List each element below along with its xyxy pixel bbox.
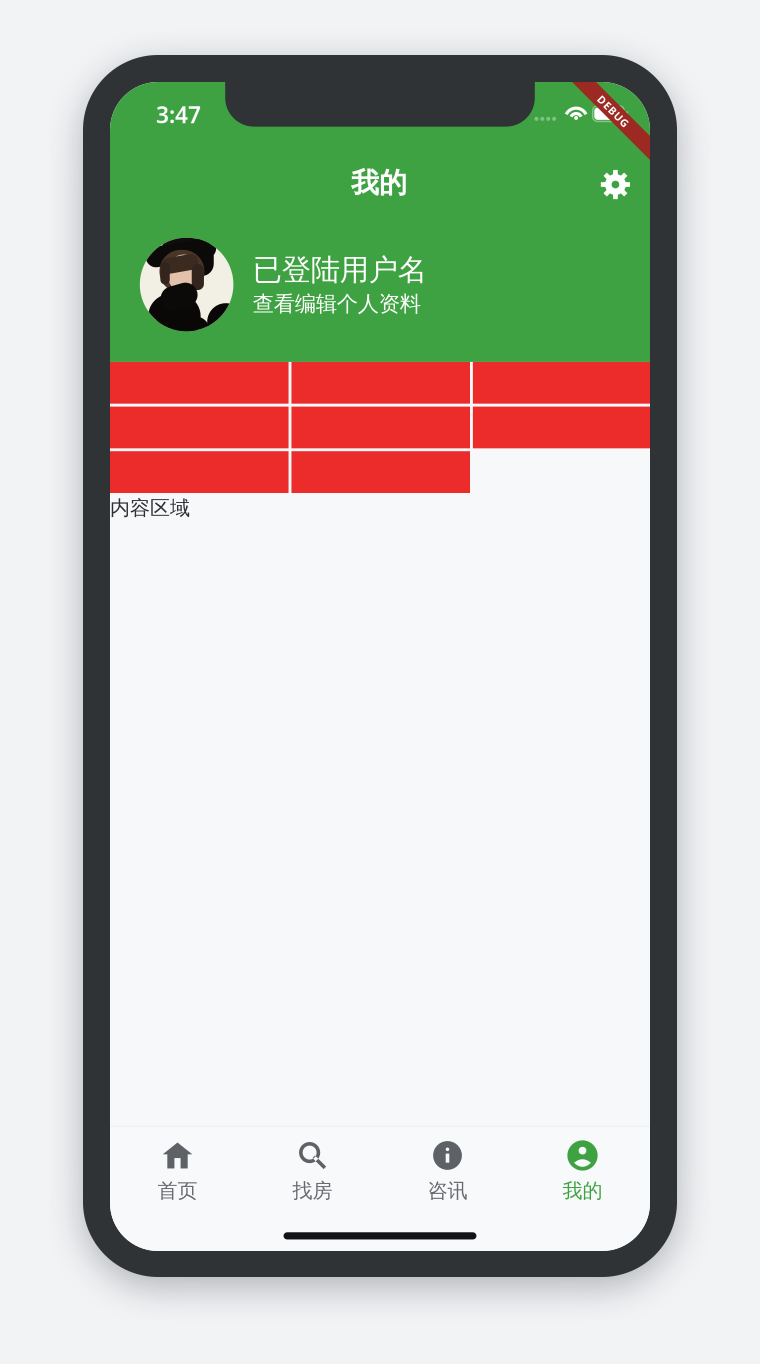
button[interactable]: 找房 bbox=[245, 1135, 380, 1206]
staticText: 查看编辑个人资料 bbox=[253, 291, 421, 317]
button[interactable]: 设置 bbox=[584, 153, 647, 216]
staticText: DEBUG bbox=[593, 104, 633, 118]
staticText: 已登陆用户名 bbox=[253, 252, 427, 288]
staticText: 找房 bbox=[292, 1178, 332, 1203]
staticText: 内容区域 bbox=[110, 496, 190, 520]
button[interactable]: 首页 bbox=[110, 1135, 245, 1206]
staticText: 咨讯 bbox=[427, 1178, 467, 1203]
staticText: 首页 bbox=[157, 1178, 197, 1203]
button[interactable]: 我的 bbox=[515, 1135, 650, 1206]
staticText: 我的 bbox=[351, 166, 407, 200]
button[interactable]: 已登陆用户名 bbox=[110, 221, 650, 348]
staticText: 我的 bbox=[562, 1178, 602, 1203]
staticText: 3:47 bbox=[156, 99, 201, 130]
button[interactable]: 咨讯 bbox=[380, 1135, 515, 1206]
